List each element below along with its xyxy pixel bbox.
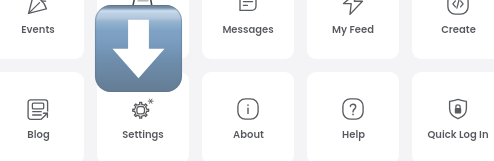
button[interactable]: Messages [202,0,294,59]
staticText: About [233,127,264,141]
button[interactable]: Blog [0,72,84,161]
staticText: Blog [27,127,50,141]
button[interactable]: My Feed [307,0,399,59]
button[interactable]: Quick Log In [412,72,494,161]
button[interactable]: Settings [97,72,189,161]
staticText: Messages [222,22,274,36]
button[interactable]: Help [307,72,399,161]
button[interactable]: Events [0,0,84,59]
staticText: Events [21,22,55,36]
button[interactable]: Create [412,0,494,59]
staticText: Create [441,22,476,36]
button[interactable]: Home [97,0,189,59]
staticText: Settings [122,127,164,141]
button[interactable]: Download [88,0,190,99]
staticText: Quick Log In [427,127,489,141]
staticText: Help [342,127,365,141]
button[interactable]: About [202,72,294,161]
staticText: My Feed [332,22,374,36]
